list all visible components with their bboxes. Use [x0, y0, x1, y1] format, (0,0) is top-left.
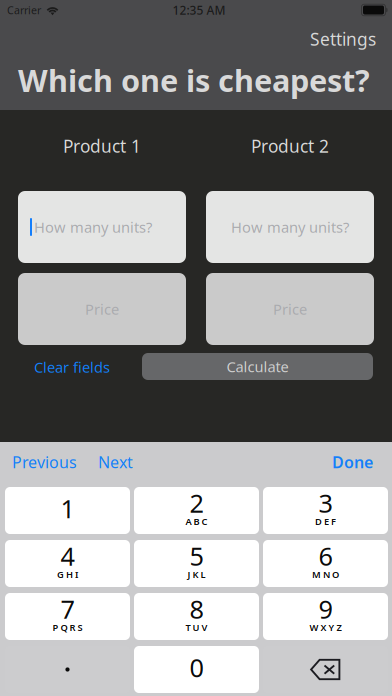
- staticText: 2: [189, 486, 203, 520]
- staticText: 4: [60, 539, 74, 573]
- staticText: Price: [85, 299, 119, 319]
- button[interactable]: Settings: [300, 23, 386, 54]
- staticText: 0: [189, 651, 203, 684]
- button[interactable]: Previous: [12, 446, 77, 478]
- staticText: W X Y Z: [309, 621, 341, 634]
- button[interactable]: 6: [263, 540, 388, 587]
- staticText: Done: [332, 451, 373, 473]
- button[interactable]: 7: [5, 593, 130, 640]
- staticText: Product 2: [251, 134, 329, 157]
- staticText: 8: [189, 592, 203, 626]
- staticText: Settings: [310, 27, 376, 50]
- staticText: A B C: [185, 515, 207, 528]
- staticText: Which one is cheapest?: [18, 60, 370, 100]
- staticText: 12:35 AM: [172, 2, 225, 18]
- staticText: How many units?: [231, 217, 349, 237]
- staticText: 3: [318, 486, 332, 520]
- staticText: D E F: [315, 515, 336, 528]
- staticText: M N O: [312, 568, 339, 581]
- button[interactable]: Next: [98, 446, 133, 478]
- button[interactable]: Calculate: [142, 353, 373, 380]
- button[interactable]: 3: [263, 487, 388, 534]
- staticText: T U V: [185, 621, 207, 634]
- button[interactable]: 5: [134, 540, 259, 587]
- staticText: P Q R S: [52, 621, 82, 634]
- staticText: Carrier: [7, 3, 41, 17]
- staticText: Calculate: [226, 357, 288, 376]
- staticText: G H I: [57, 568, 78, 581]
- button[interactable]: 2: [134, 487, 259, 534]
- staticText: Product 1: [63, 134, 141, 157]
- button[interactable]: 8: [134, 593, 259, 640]
- button[interactable]: 0: [134, 646, 259, 693]
- button[interactable]: Delete: [263, 646, 388, 693]
- button[interactable]: Clear fields: [26, 352, 118, 382]
- staticText: Next: [98, 451, 133, 473]
- staticText: 1: [60, 492, 74, 525]
- staticText: 5: [189, 539, 203, 573]
- button[interactable]: Done: [332, 446, 373, 478]
- staticText: Price: [273, 299, 307, 319]
- button[interactable]: Decimal point: [5, 646, 130, 693]
- button[interactable]: 1: [5, 487, 130, 534]
- staticText: J K L: [187, 568, 205, 581]
- staticText: 6: [318, 539, 332, 573]
- staticText: 9: [318, 592, 332, 626]
- button[interactable]: 9: [263, 593, 388, 640]
- staticText: Clear fields: [34, 357, 110, 377]
- staticText: 7: [60, 592, 74, 626]
- staticText: How many units?: [34, 217, 152, 237]
- staticText: Previous: [12, 451, 77, 473]
- button[interactable]: 4: [5, 540, 130, 587]
